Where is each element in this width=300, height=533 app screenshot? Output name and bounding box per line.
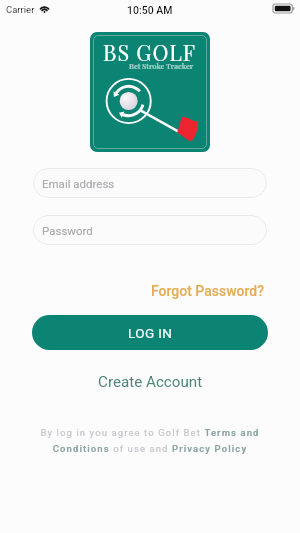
button[interactable]: By log in you agree to Golf Bet Terms an… <box>38 427 262 454</box>
staticText: Password <box>42 224 93 237</box>
button[interactable]: Create Account <box>96 371 205 393</box>
staticText: Bet Stroke Tracker <box>129 61 194 71</box>
staticText: Carrier <box>6 4 35 15</box>
staticText: Email address <box>42 177 115 190</box>
staticText: Create Account <box>98 373 203 391</box>
other: BS Golf logo <box>90 32 210 152</box>
button[interactable]: LOG IN <box>32 315 268 350</box>
staticText: LOG IN <box>128 325 173 341</box>
staticText: BS GOLF <box>103 38 197 67</box>
button[interactable]: Email address <box>33 168 267 198</box>
staticText: Forgot Password? <box>151 283 265 299</box>
button[interactable]: Forgot Password? <box>149 281 267 301</box>
staticText: By log in you agree to Golf Bet Terms an… <box>38 427 262 454</box>
button[interactable]: Password <box>33 215 267 245</box>
staticText: 10:50 AM <box>127 4 173 16</box>
